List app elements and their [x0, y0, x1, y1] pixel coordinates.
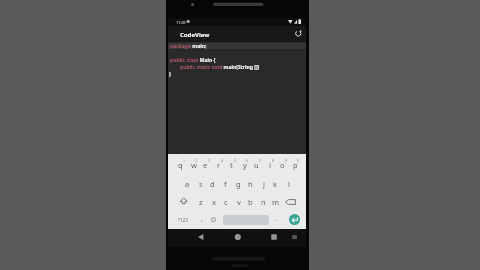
staticText: v	[237, 197, 241, 207]
button[interactable]	[266, 230, 281, 244]
button[interactable]	[207, 213, 220, 226]
button[interactable]	[230, 230, 245, 244]
button[interactable]	[286, 195, 299, 208]
staticText: 4	[221, 158, 224, 163]
staticText: f	[224, 179, 227, 189]
staticText: 9	[285, 158, 288, 163]
staticText: 5	[234, 158, 237, 163]
staticText: e	[203, 160, 208, 170]
button[interactable]: i	[263, 156, 276, 174]
button[interactable]: .	[246, 209, 306, 229]
staticText: ,	[201, 214, 203, 224]
staticText: x	[212, 197, 216, 207]
staticText: n	[261, 197, 266, 207]
button[interactable]: w	[187, 156, 200, 174]
button[interactable]: n	[257, 193, 270, 211]
button[interactable]: s	[194, 175, 207, 193]
staticText: w	[191, 160, 197, 170]
button[interactable]: r	[212, 156, 225, 174]
staticText: r	[217, 160, 221, 170]
button[interactable]	[292, 27, 305, 40]
staticText: i	[269, 160, 271, 170]
staticText: z	[199, 197, 203, 207]
staticText: 1	[183, 158, 186, 163]
staticText: u	[254, 160, 259, 170]
staticText: h	[248, 179, 253, 189]
button[interactable]: k	[269, 175, 282, 193]
button[interactable]: c	[219, 193, 232, 211]
staticText: p	[293, 160, 298, 170]
button[interactable]: x	[207, 193, 220, 211]
staticText: ?123	[178, 217, 188, 223]
button[interactable]: b	[244, 193, 257, 211]
button[interactable]: z	[194, 193, 207, 211]
button[interactable]	[289, 214, 300, 225]
button[interactable]: p	[289, 156, 302, 174]
button[interactable]: v	[232, 193, 245, 211]
button[interactable]: CodeView	[180, 26, 270, 43]
button[interactable]: o	[276, 156, 289, 174]
button[interactable]	[168, 42, 306, 154]
staticText: m	[272, 197, 280, 207]
staticText: y	[243, 160, 247, 170]
staticText: .	[275, 214, 277, 224]
staticText: 2	[195, 158, 198, 163]
staticText: l	[288, 179, 290, 189]
staticText: 6	[246, 158, 249, 163]
staticText: 11:31	[176, 20, 186, 25]
staticText: a	[185, 179, 190, 189]
button[interactable]: g	[232, 175, 245, 193]
button[interactable]: e	[199, 156, 212, 174]
button[interactable]: a	[181, 175, 194, 193]
staticText: public static void main(String [])	[180, 64, 260, 71]
staticText: j	[263, 179, 265, 189]
button[interactable]: j	[257, 175, 270, 193]
staticText: CodeView	[180, 31, 210, 39]
staticText: b	[248, 197, 253, 207]
staticText: package main;	[170, 43, 207, 50]
staticText: t	[230, 160, 233, 170]
button[interactable]: d	[206, 175, 219, 193]
button[interactable]: l	[282, 175, 295, 193]
button[interactable]	[288, 230, 301, 244]
staticText: g	[236, 179, 241, 189]
button[interactable]: q	[174, 156, 187, 174]
staticText: k	[273, 179, 278, 189]
button[interactable]: t	[225, 156, 238, 174]
staticText: s	[199, 179, 203, 189]
staticText: q	[178, 160, 183, 170]
button[interactable]: ,	[172, 209, 232, 229]
button[interactable]	[178, 195, 191, 208]
button[interactable]: y	[238, 156, 251, 174]
staticText: d	[210, 179, 215, 189]
button[interactable]	[193, 230, 208, 244]
staticText: 0	[297, 158, 300, 163]
staticText: o	[280, 160, 285, 170]
button[interactable]: ?123	[153, 210, 213, 230]
button[interactable]: m	[269, 193, 282, 211]
button[interactable]: u	[250, 156, 263, 174]
staticText: 7	[259, 158, 262, 163]
staticText: public class Main {	[170, 57, 216, 64]
staticText: c	[224, 197, 228, 207]
button[interactable]: f	[219, 175, 232, 193]
staticText: }	[169, 71, 171, 78]
staticText: 3	[208, 158, 211, 163]
button[interactable]: h	[244, 175, 257, 193]
staticText: 8	[272, 158, 275, 163]
